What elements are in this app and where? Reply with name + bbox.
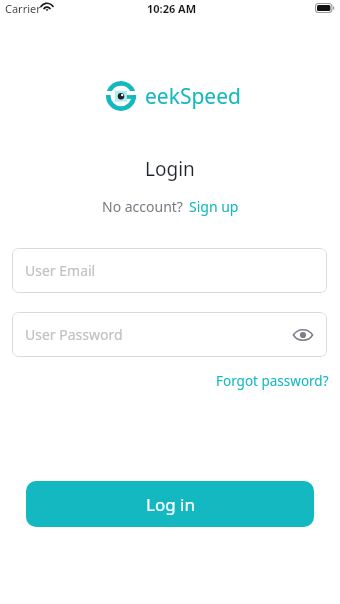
- staticText: User Email: [25, 261, 96, 280]
- staticText: eekSpeed: [145, 82, 241, 111]
- button[interactable]: User Email: [12, 248, 327, 293]
- staticText: Login: [145, 156, 195, 182]
- button[interactable]: Forgot password?: [216, 372, 329, 390]
- staticText: Forgot password?: [216, 372, 329, 390]
- staticText: Sign up: [189, 197, 239, 216]
- staticText: 10:26 AM: [147, 1, 197, 16]
- staticText: Carrier: [5, 1, 41, 16]
- button[interactable]: User Password: [12, 312, 327, 357]
- staticText: User Password: [25, 325, 123, 344]
- button[interactable]: Show password: [289, 321, 317, 349]
- button[interactable]: Log in: [26, 481, 314, 527]
- button[interactable]: Sign up: [189, 197, 239, 216]
- staticText: Log in: [146, 493, 195, 516]
- staticText: No account?: [102, 197, 183, 216]
